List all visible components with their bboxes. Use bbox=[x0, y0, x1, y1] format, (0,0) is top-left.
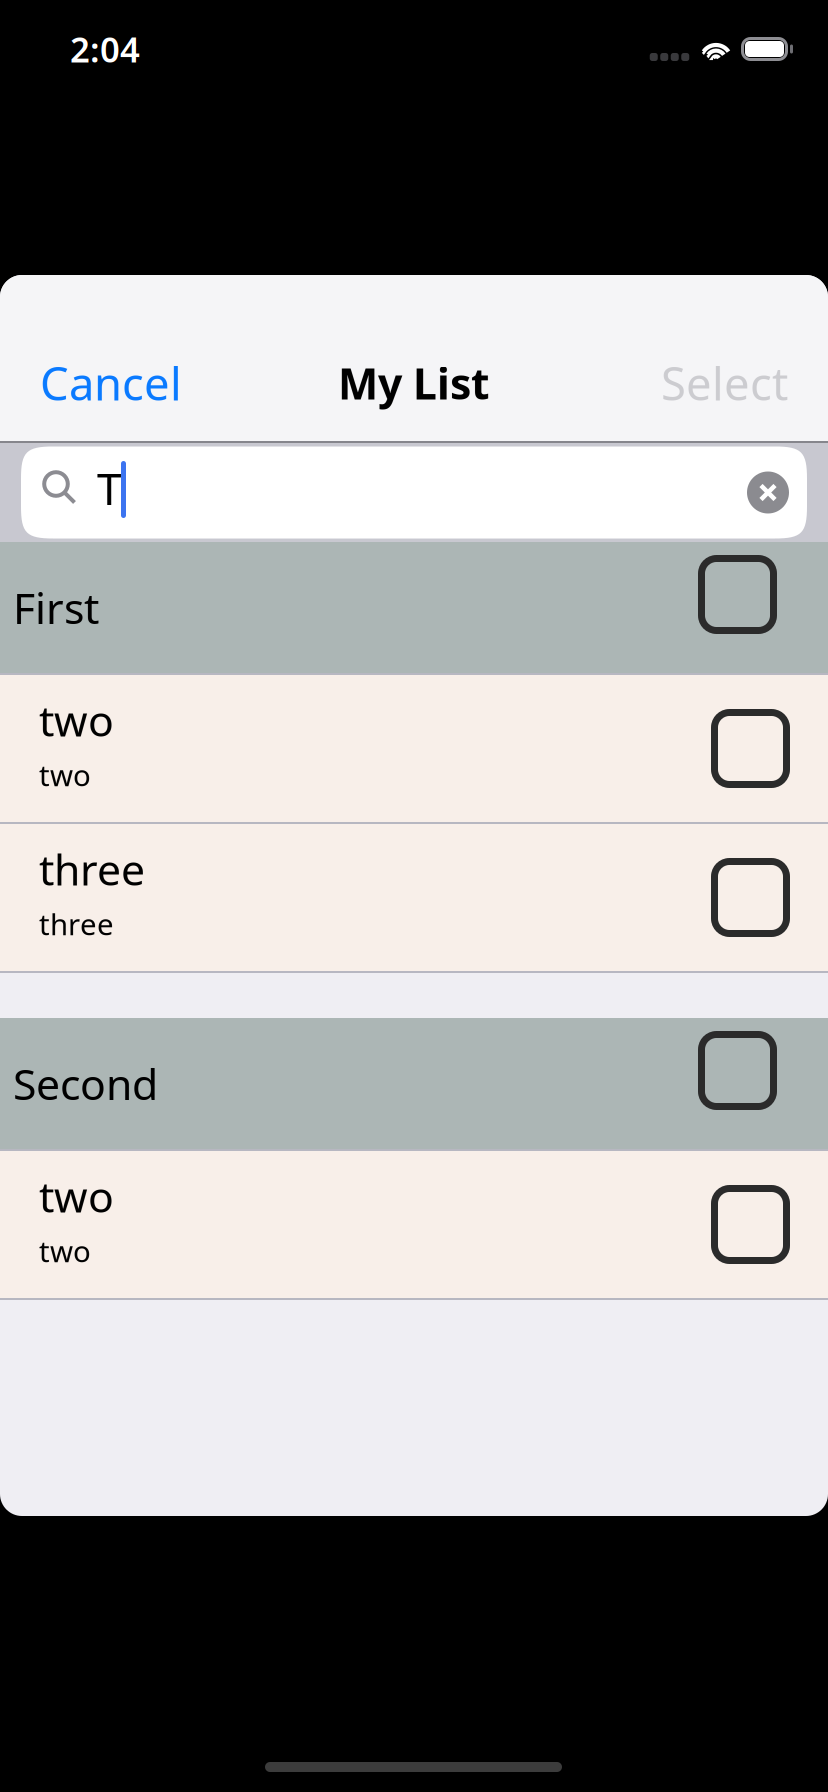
staticText: Second bbox=[13, 1055, 158, 1112]
button[interactable]: three bbox=[0, 824, 828, 971]
staticText: two bbox=[39, 1168, 114, 1224]
staticText: two bbox=[39, 755, 91, 794]
button[interactable]: Second bbox=[0, 1018, 828, 1149]
staticText: Select bbox=[661, 353, 788, 413]
button[interactable]: Clear search text bbox=[747, 471, 789, 513]
button[interactable]: Cancel bbox=[40, 345, 182, 421]
button[interactable]: First bbox=[0, 542, 828, 673]
button[interactable]: two bbox=[0, 1151, 828, 1298]
staticText: T bbox=[97, 459, 121, 517]
staticText: two bbox=[39, 692, 114, 748]
staticText: three bbox=[39, 904, 114, 943]
staticText: three bbox=[39, 841, 145, 897]
button[interactable]: Select bbox=[661, 345, 788, 421]
staticText: My List bbox=[338, 355, 490, 411]
staticText: two bbox=[39, 1231, 91, 1270]
staticText: 2:04 bbox=[70, 26, 140, 72]
staticText: First bbox=[13, 579, 99, 636]
button[interactable]: two bbox=[0, 675, 828, 822]
staticText: Cancel bbox=[40, 353, 182, 413]
